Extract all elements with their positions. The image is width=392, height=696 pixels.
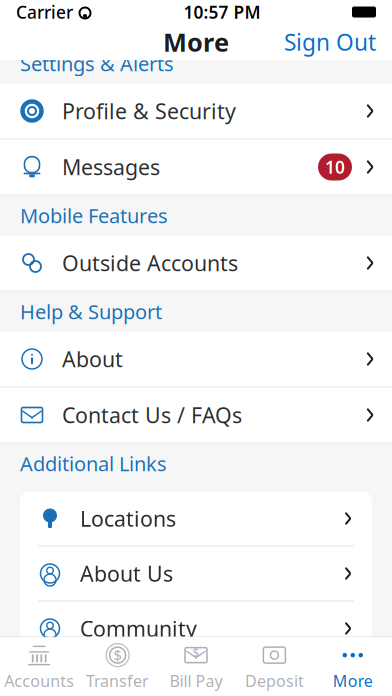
staticText: $ [114,645,122,665]
staticText: Bill Pay [169,670,222,691]
staticText: Settings & Alerts [20,50,174,77]
staticText: Outside Accounts [62,249,238,277]
staticText: 10:57 PM [183,0,260,23]
staticText: $ [192,645,199,661]
staticText: Additional Links [20,450,167,477]
button[interactable]: Outside Accounts [0,235,392,291]
button[interactable]: Sign Out [268,19,392,65]
staticText: Mobile Features [20,202,168,229]
button[interactable]: $ [78,637,157,696]
button[interactable]: Contact Us / FAQs [0,387,392,443]
button[interactable]: About [0,331,392,387]
button[interactable]: Messages [0,139,392,195]
button[interactable]: About Us [20,546,372,601]
staticText: More [333,670,373,691]
staticText: Carrier [16,0,73,23]
button[interactable]: $ [157,637,235,696]
staticText: Transfer [86,670,149,691]
button[interactable]: Community [20,601,372,656]
button[interactable]: Accounts [0,637,78,696]
button[interactable]: Locations [20,491,372,546]
staticText: Community [80,614,197,643]
staticText: More [163,25,229,59]
staticText: About [62,345,123,373]
button[interactable]: More [314,637,392,696]
button[interactable]: Deposit [235,637,314,696]
staticText: Sign Out [284,27,376,57]
button[interactable]: Profile & Security [0,83,392,139]
staticText: 10 [325,155,345,178]
staticText: Accounts [4,670,74,691]
staticText: Deposit [245,670,304,691]
staticText: Locations [80,504,176,533]
staticText: Profile & Security [62,97,236,125]
staticText: Help & Support [20,298,162,325]
staticText: Messages [62,153,160,181]
staticText: Contact Us / FAQs [62,401,242,429]
staticText: About Us [80,559,173,588]
